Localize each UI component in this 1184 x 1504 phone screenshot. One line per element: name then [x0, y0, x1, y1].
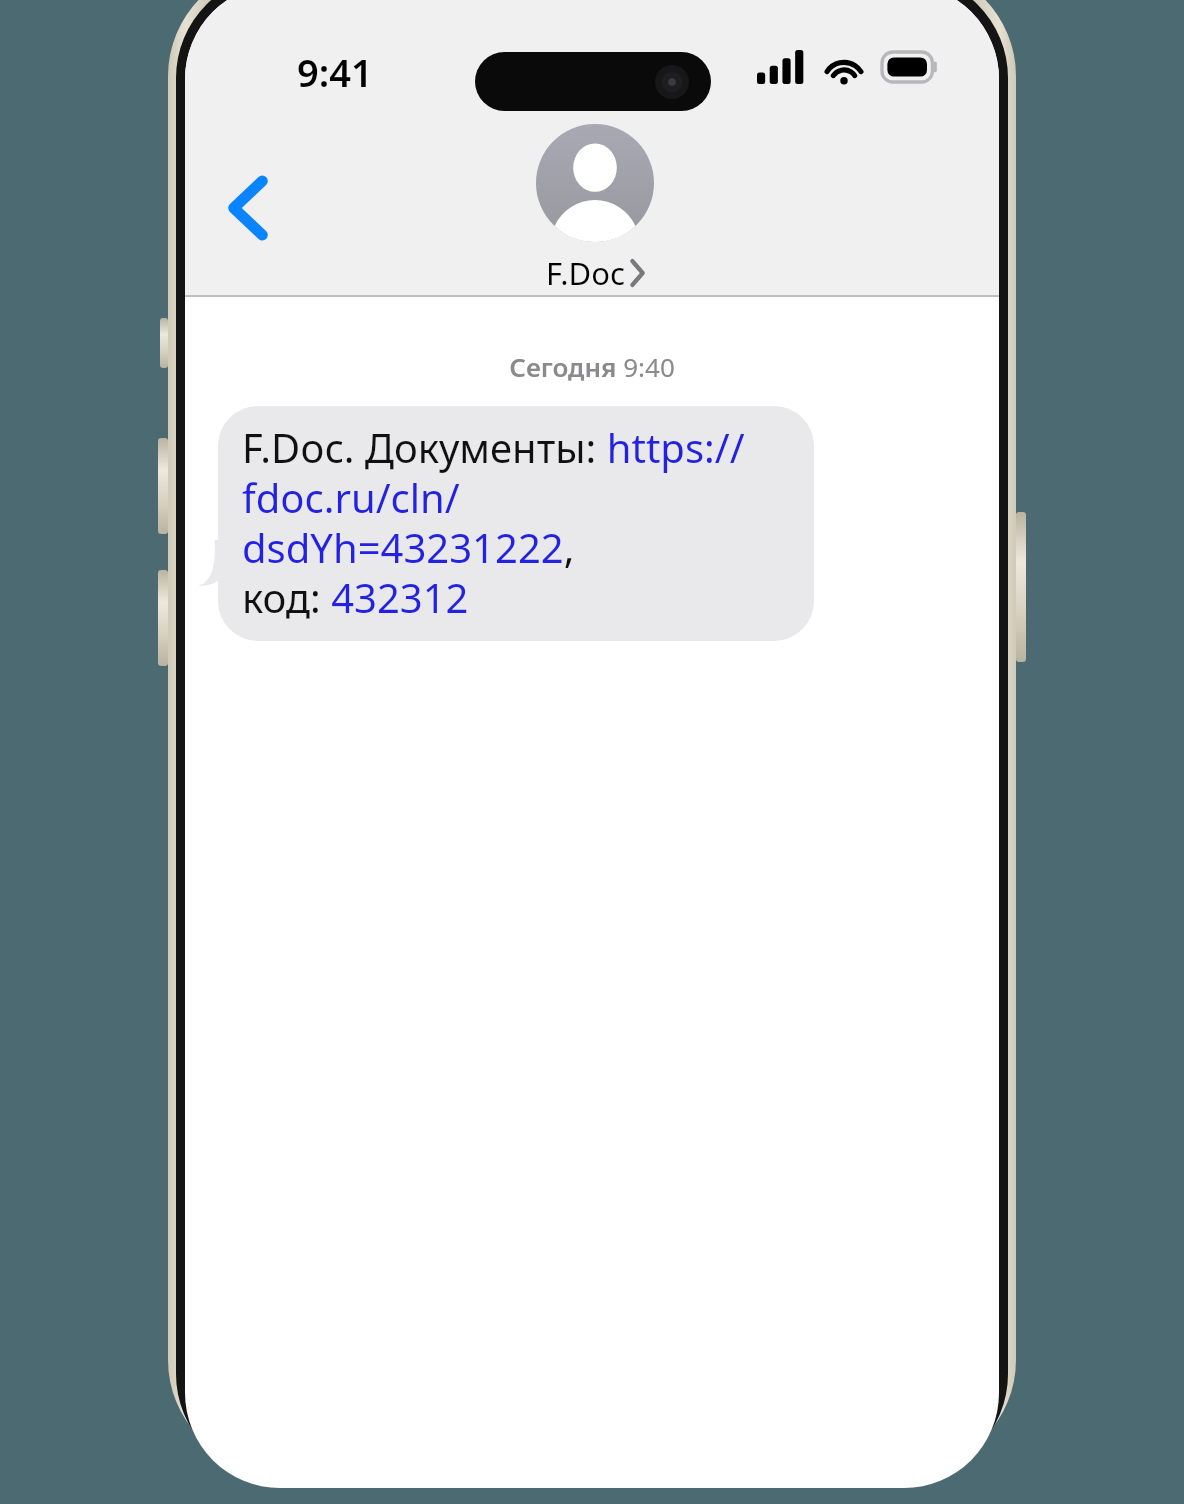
staticText: Сегодня 9:40	[509, 349, 675, 384]
button[interactable]: F.Doc	[536, 124, 654, 294]
staticText: F.Doc. Документы: https://fdoc.ru/cln/ds…	[242, 420, 790, 625]
staticText: 9:41	[297, 46, 373, 98]
button[interactable]: F.Doc. Документы: https://fdoc.ru/cln/ds…	[218, 406, 814, 641]
staticText: F.Doc	[546, 252, 625, 294]
button[interactable]: Back	[205, 162, 291, 254]
